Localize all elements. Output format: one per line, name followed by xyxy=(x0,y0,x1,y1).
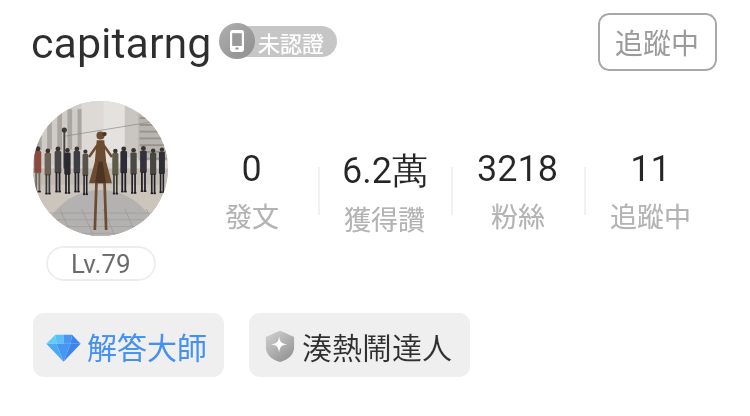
button[interactable]: 6.2萬 xyxy=(318,148,451,233)
staticText: 湊熱鬧達人 xyxy=(302,324,452,367)
button[interactable]: 0 xyxy=(185,148,318,233)
staticText: 發文 xyxy=(225,196,279,233)
staticText: 3218 xyxy=(477,148,558,190)
button[interactable]: Profile photo xyxy=(33,101,168,236)
button[interactable]: 追蹤中 xyxy=(598,13,717,71)
button[interactable]: 解答大師 xyxy=(33,313,224,377)
staticText: 粉絲 xyxy=(491,196,545,233)
staticText: 獲得讚 xyxy=(344,199,425,233)
button[interactable]: 湊熱鬧達人 xyxy=(249,313,470,377)
button[interactable]: 3218 xyxy=(451,148,584,233)
staticText: 6.2萬 xyxy=(342,148,428,193)
staticText: 追蹤中 xyxy=(610,196,691,233)
staticText: 11 xyxy=(630,148,671,190)
staticText: 未認證 xyxy=(258,26,325,57)
button[interactable]: 11 xyxy=(584,148,717,233)
staticText: 解答大師 xyxy=(87,324,207,367)
staticText: 追蹤中 xyxy=(615,22,700,63)
staticText: Lv.79 xyxy=(71,249,131,279)
button[interactable]: Unverified xyxy=(219,23,337,59)
staticText: capitarng xyxy=(31,18,212,68)
button[interactable]: Lv.79 xyxy=(46,246,156,281)
staticText: 0 xyxy=(241,148,262,190)
